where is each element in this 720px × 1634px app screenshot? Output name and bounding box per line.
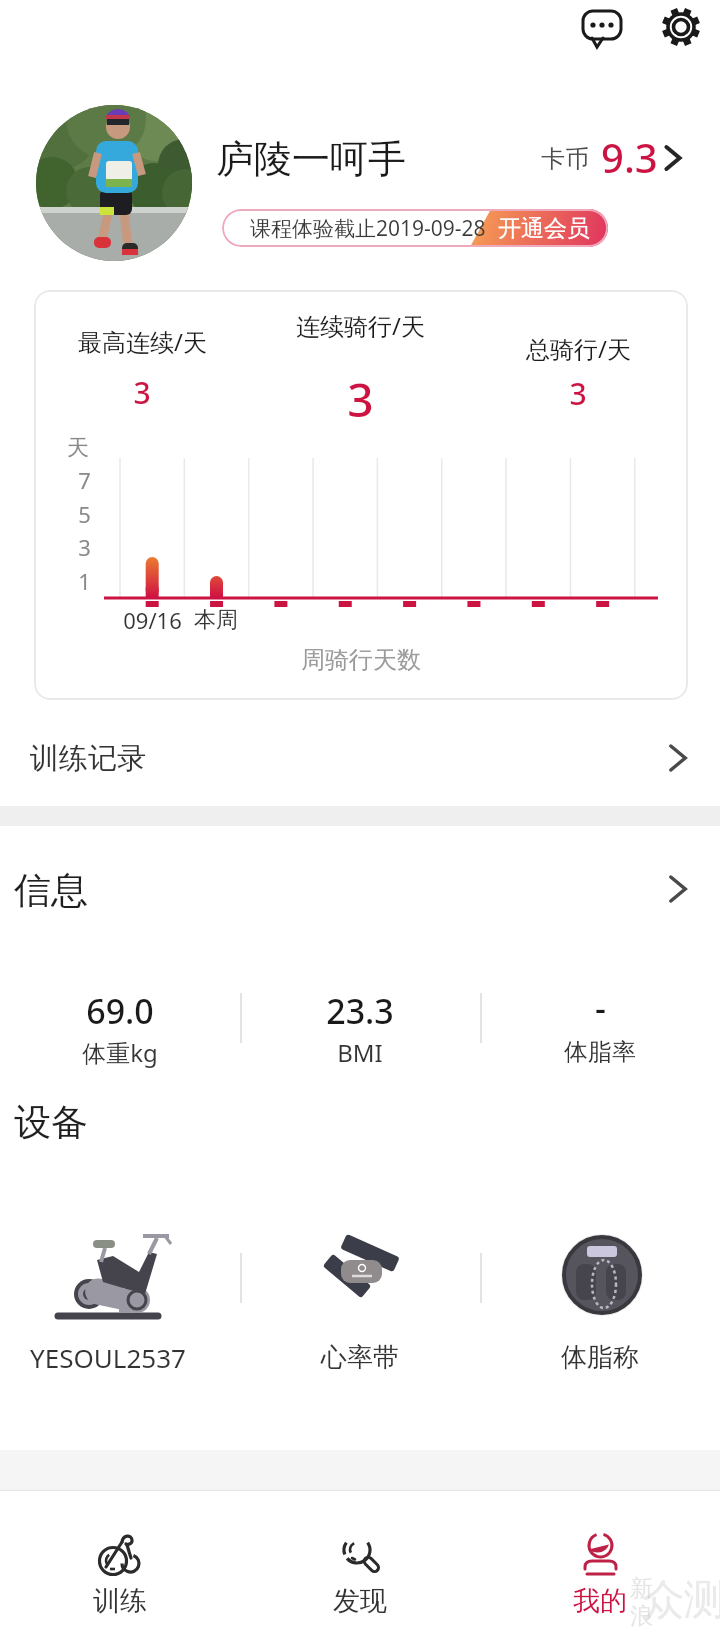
staticText: 训练记录 [30,740,146,777]
button[interactable] [578,6,624,52]
staticText: - [595,985,606,1031]
staticText: 天 [67,434,89,462]
staticText: 众测 [642,1574,720,1627]
button[interactable]: 训练 [60,1500,180,1625]
staticText: BMI [337,1036,383,1069]
staticText: 3 [347,368,374,428]
staticText: 开通会员 [498,214,590,243]
button[interactable]: 训练记录 [0,722,720,794]
button[interactable]: 我的 [540,1500,660,1625]
staticText: 体重kg [82,1036,158,1069]
staticText: 浪 [630,1602,653,1631]
staticText: 新 [630,1574,653,1603]
staticText: 1 [78,566,91,596]
button[interactable]: 信息 [0,845,720,935]
staticText: 心率带 [321,1341,399,1374]
button[interactable]: 课程体验截止2019-09-28 [222,209,608,247]
staticText: 体脂率 [564,1037,636,1067]
staticText: 最高连续/天 [78,325,207,358]
staticText: 卡币 [541,144,589,174]
staticText: 体脂称 [561,1341,639,1374]
staticText: YESOUL2537 [30,1340,186,1374]
staticText: 3 [569,373,587,414]
button[interactable]: YESOUL2537 [30,1225,190,1385]
staticText: 我的 [573,1584,627,1618]
staticText: 09/16 [123,605,182,635]
button[interactable] [535,130,687,188]
staticText: 总骑行/天 [526,332,631,365]
staticText: 本周 [194,606,238,634]
staticText: 庐陵一呵手 [216,135,406,183]
staticText: 3 [78,532,91,562]
button[interactable]: 心率带 [280,1225,440,1385]
staticText: 信息 [14,867,88,914]
button[interactable] [36,105,192,261]
button[interactable]: 发现 [300,1500,420,1625]
staticText: 23.3 [326,988,394,1034]
staticText: 9.3 [601,130,658,184]
staticText: 69.0 [86,988,154,1034]
staticText: 课程体验截止2019-09-28 [250,214,486,243]
button[interactable] [658,4,704,50]
staticText: 训练 [93,1584,147,1618]
staticText: 5 [78,499,91,529]
staticText: 周骑行天数 [301,645,421,675]
staticText: 连续骑行/天 [296,309,425,342]
staticText: 3 [133,372,151,413]
button[interactable]: 体脂称 [520,1225,680,1385]
staticText: 7 [78,465,91,495]
staticText: 发现 [333,1584,387,1618]
staticText: 设备 [14,1099,88,1146]
